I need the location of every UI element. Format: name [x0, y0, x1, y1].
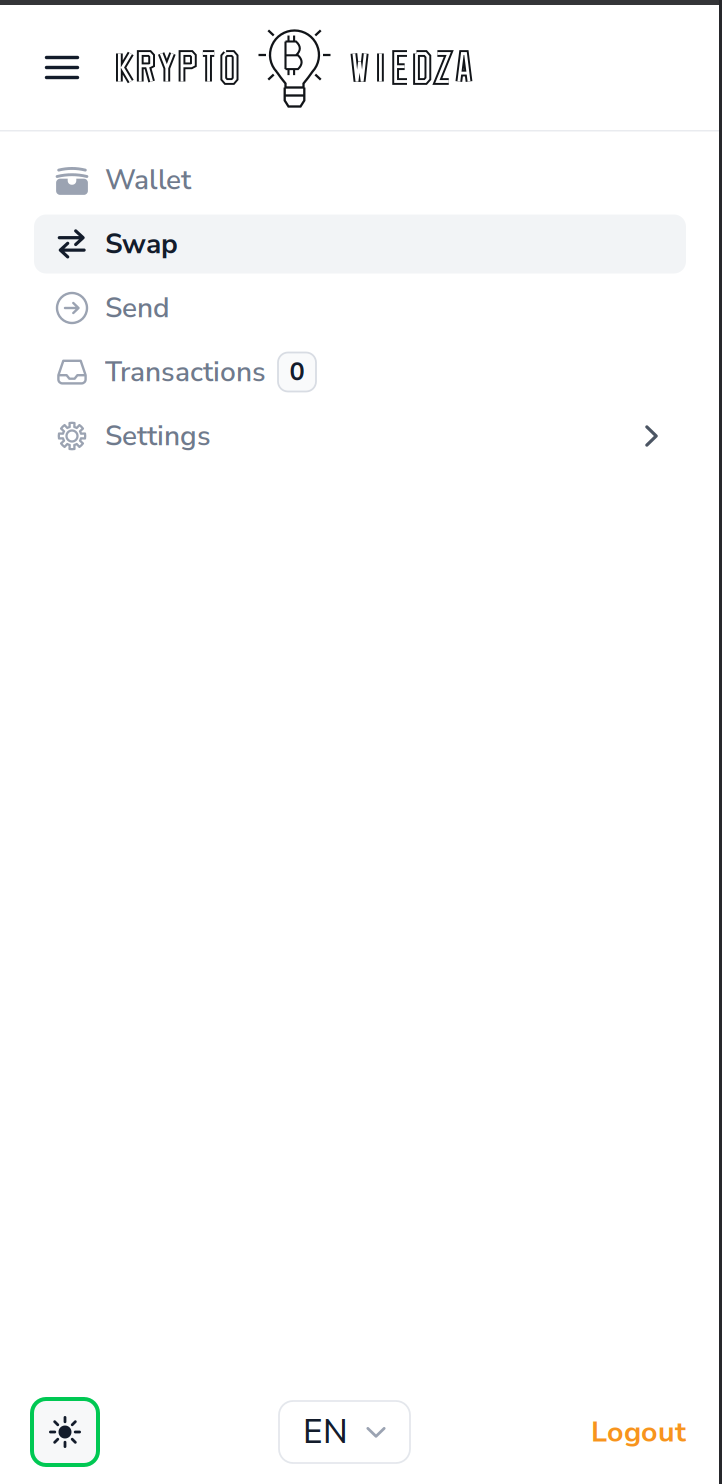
button[interactable]: Logout: [591, 1412, 686, 1451]
button[interactable]: Swap: [34, 214, 686, 273]
staticText: 0: [289, 355, 304, 389]
staticText: Logout: [591, 1412, 686, 1451]
staticText: EN: [303, 1409, 348, 1455]
button[interactable]: Toggle theme: [32, 1399, 98, 1465]
staticText: Settings: [105, 417, 211, 455]
button[interactable]: EN: [279, 1401, 410, 1463]
button[interactable]: Wallet: [34, 150, 686, 209]
button[interactable]: Transactions: [34, 342, 686, 401]
staticText: Send: [105, 289, 170, 327]
button[interactable]: Menu: [34, 39, 90, 95]
button[interactable]: Settings: [34, 406, 686, 465]
staticText: Transactions: [105, 353, 266, 391]
staticText: Swap: [105, 225, 178, 263]
button[interactable]: Send: [34, 278, 686, 337]
staticText: Wallet: [105, 161, 191, 199]
